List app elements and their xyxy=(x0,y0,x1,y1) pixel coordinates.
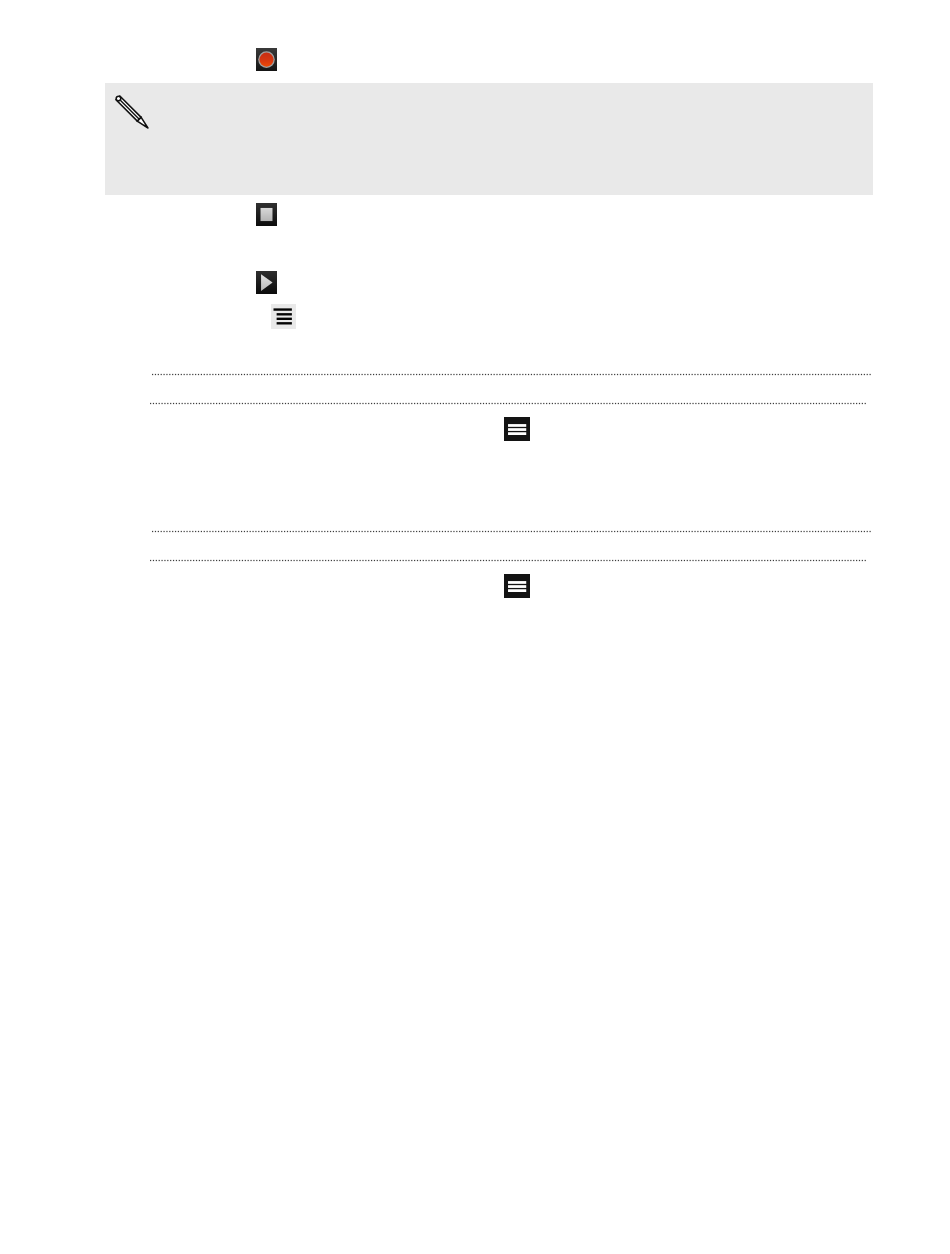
button[interactable]: Recordings list xyxy=(271,304,296,329)
button[interactable]: Record xyxy=(256,48,277,71)
button[interactable]: Stop xyxy=(256,203,277,226)
button[interactable]: Play xyxy=(256,271,277,294)
button[interactable]: Menu xyxy=(504,574,530,598)
button[interactable]: Menu xyxy=(504,417,530,441)
